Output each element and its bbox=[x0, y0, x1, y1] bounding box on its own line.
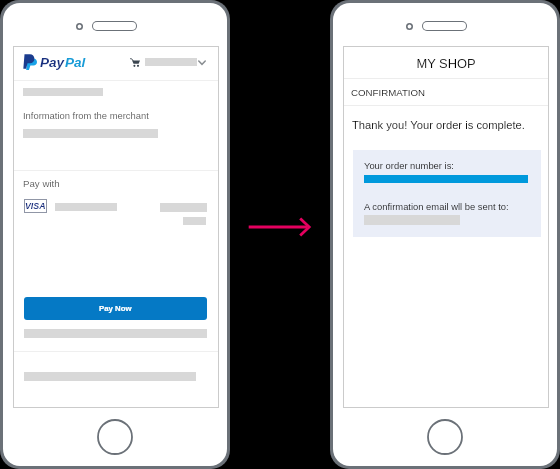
staticText: MY SHOP bbox=[344, 56, 548, 70]
button[interactable]: Expand account menu bbox=[196, 58, 208, 66]
staticText: Your order number is: bbox=[364, 160, 454, 171]
staticText: Pay bbox=[40, 55, 65, 70]
staticText: CONFIRMATION bbox=[351, 87, 426, 98]
staticText: Pay Now bbox=[99, 304, 132, 313]
staticText: Pal bbox=[65, 55, 86, 70]
button[interactable]: Pay bbox=[24, 54, 86, 70]
staticText: A confirmation email wll be sent to: bbox=[364, 201, 509, 212]
staticText: Pay with bbox=[23, 178, 60, 189]
staticText: VISA bbox=[25, 201, 46, 211]
button[interactable]: Pay Now bbox=[24, 297, 207, 320]
staticText: Information from the merchant bbox=[23, 110, 149, 121]
button[interactable]: Shopping cart bbox=[130, 58, 140, 67]
staticText: Thank you! Your order is complete. bbox=[352, 119, 525, 132]
